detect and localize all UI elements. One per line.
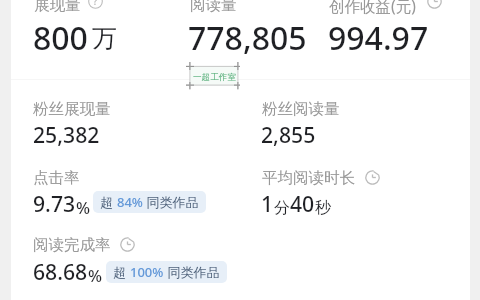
button[interactable]: 展现量 — [34, 0, 81, 15]
staticText: 秒 — [315, 198, 331, 218]
staticText: 粉丝阅读量 — [262, 99, 340, 119]
staticText: 阅读量 — [190, 0, 237, 15]
other: Updated recently — [365, 170, 380, 185]
staticText: 超 — [113, 263, 130, 281]
staticText: 同类作品 — [143, 193, 199, 211]
staticText: 平均阅读时长 — [262, 168, 355, 188]
staticText: 100% — [130, 263, 164, 281]
staticText: 40 — [290, 189, 315, 218]
button[interactable]: 超 — [106, 261, 227, 283]
staticText: 84% — [117, 193, 143, 211]
staticText: 68.68 — [33, 257, 88, 286]
staticText: 同类作品 — [164, 263, 220, 281]
button[interactable]: 超 — [93, 191, 206, 213]
staticText: 25,382 — [33, 120, 100, 149]
button[interactable]: 阅读量 — [190, 0, 237, 15]
button[interactable]: 平均阅读时长 — [262, 168, 355, 188]
staticText: 994.97 — [328, 16, 429, 60]
button[interactable]: 粉丝展现量 — [33, 99, 111, 119]
staticText: 一超工作室 — [193, 72, 236, 83]
staticText: 800 — [33, 16, 88, 60]
other: Updated recently — [120, 237, 135, 252]
staticText: 展现量 — [34, 0, 81, 15]
staticText: 阅读完成率 — [33, 235, 111, 255]
staticText: 创作收益(元) — [329, 0, 416, 16]
staticText: 粉丝展现量 — [33, 99, 111, 119]
staticText: 分 — [274, 198, 290, 218]
staticText: 778,805 — [188, 16, 307, 60]
button[interactable]: 阅读完成率 — [33, 235, 111, 255]
staticText: ? — [93, 0, 98, 9]
staticText: 万 — [92, 23, 117, 54]
other: Updated recently — [427, 0, 442, 9]
button[interactable]: 点击率 — [33, 168, 80, 188]
button[interactable]: Help — [88, 0, 103, 9]
staticText: % — [76, 196, 91, 218]
staticText: 9.73 — [33, 189, 76, 218]
staticText: 超 — [100, 193, 117, 211]
staticText: % — [88, 264, 103, 286]
staticText: 2,855 — [261, 120, 316, 149]
staticText: 1 — [261, 189, 274, 218]
button[interactable]: 粉丝阅读量 — [262, 99, 340, 119]
staticText: 点击率 — [33, 168, 80, 188]
button[interactable]: 创作收益(元) — [329, 0, 416, 16]
